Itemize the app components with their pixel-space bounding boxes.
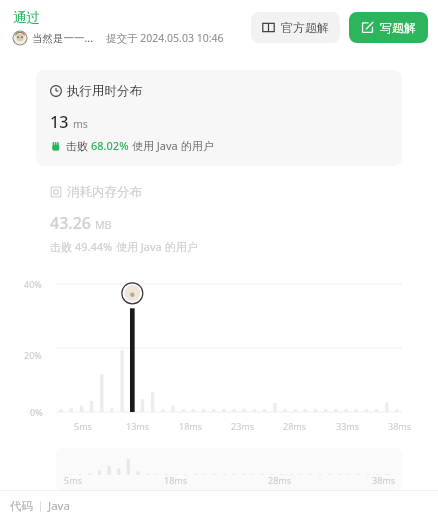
staticText: 23ms [231,420,255,432]
staticText: 13 [50,111,69,133]
button[interactable]: 消耗内存分布 [50,184,388,254]
button[interactable]: Write solution [349,12,428,43]
staticText: 38ms [388,420,412,432]
staticText: MB [95,218,112,232]
staticText: 40% [24,278,42,290]
button[interactable]: 代码 [6,498,74,514]
staticText: 击败 [50,240,72,254]
staticText: 代码 [10,499,33,513]
button[interactable]: 执行用时分布 [36,70,402,166]
staticText: Java [48,498,70,514]
staticText: 28ms [268,474,292,486]
staticText: 写题解 [380,20,416,35]
staticText: 38ms [372,474,396,486]
staticText: 13ms [126,420,150,432]
staticText: 18ms [179,420,203,432]
staticText: 18ms [164,474,188,486]
other: Write solution [361,21,374,34]
staticText: 执行用时分布 [67,83,142,99]
staticText: 击败 [66,139,88,153]
staticText: 通过 [13,9,40,26]
other: Official solution [262,21,275,34]
staticText: 使用 Java 的用户 [116,239,198,254]
staticText: 0% [30,406,43,418]
staticText: 官方题解 [281,20,329,35]
staticText: ms [73,117,88,131]
staticText: 使用 Java 的用户 [132,138,214,153]
staticText: 33ms [336,420,360,432]
staticText: 68.02% [91,138,129,153]
staticText: 提交于 2024.05.03 10:46 [106,31,224,45]
button[interactable]: Official solution [251,12,340,43]
staticText: 5ms [74,420,92,432]
staticText: 20% [24,349,42,361]
staticText: 当然是一一... [32,31,93,45]
staticText: 28ms [283,420,307,432]
staticText: 消耗内存分布 [67,184,142,200]
staticText: 5ms [64,474,82,486]
staticText: 43.26 [50,212,91,234]
button[interactable]: 5ms [56,448,402,490]
staticText: 49.44% [75,239,113,254]
